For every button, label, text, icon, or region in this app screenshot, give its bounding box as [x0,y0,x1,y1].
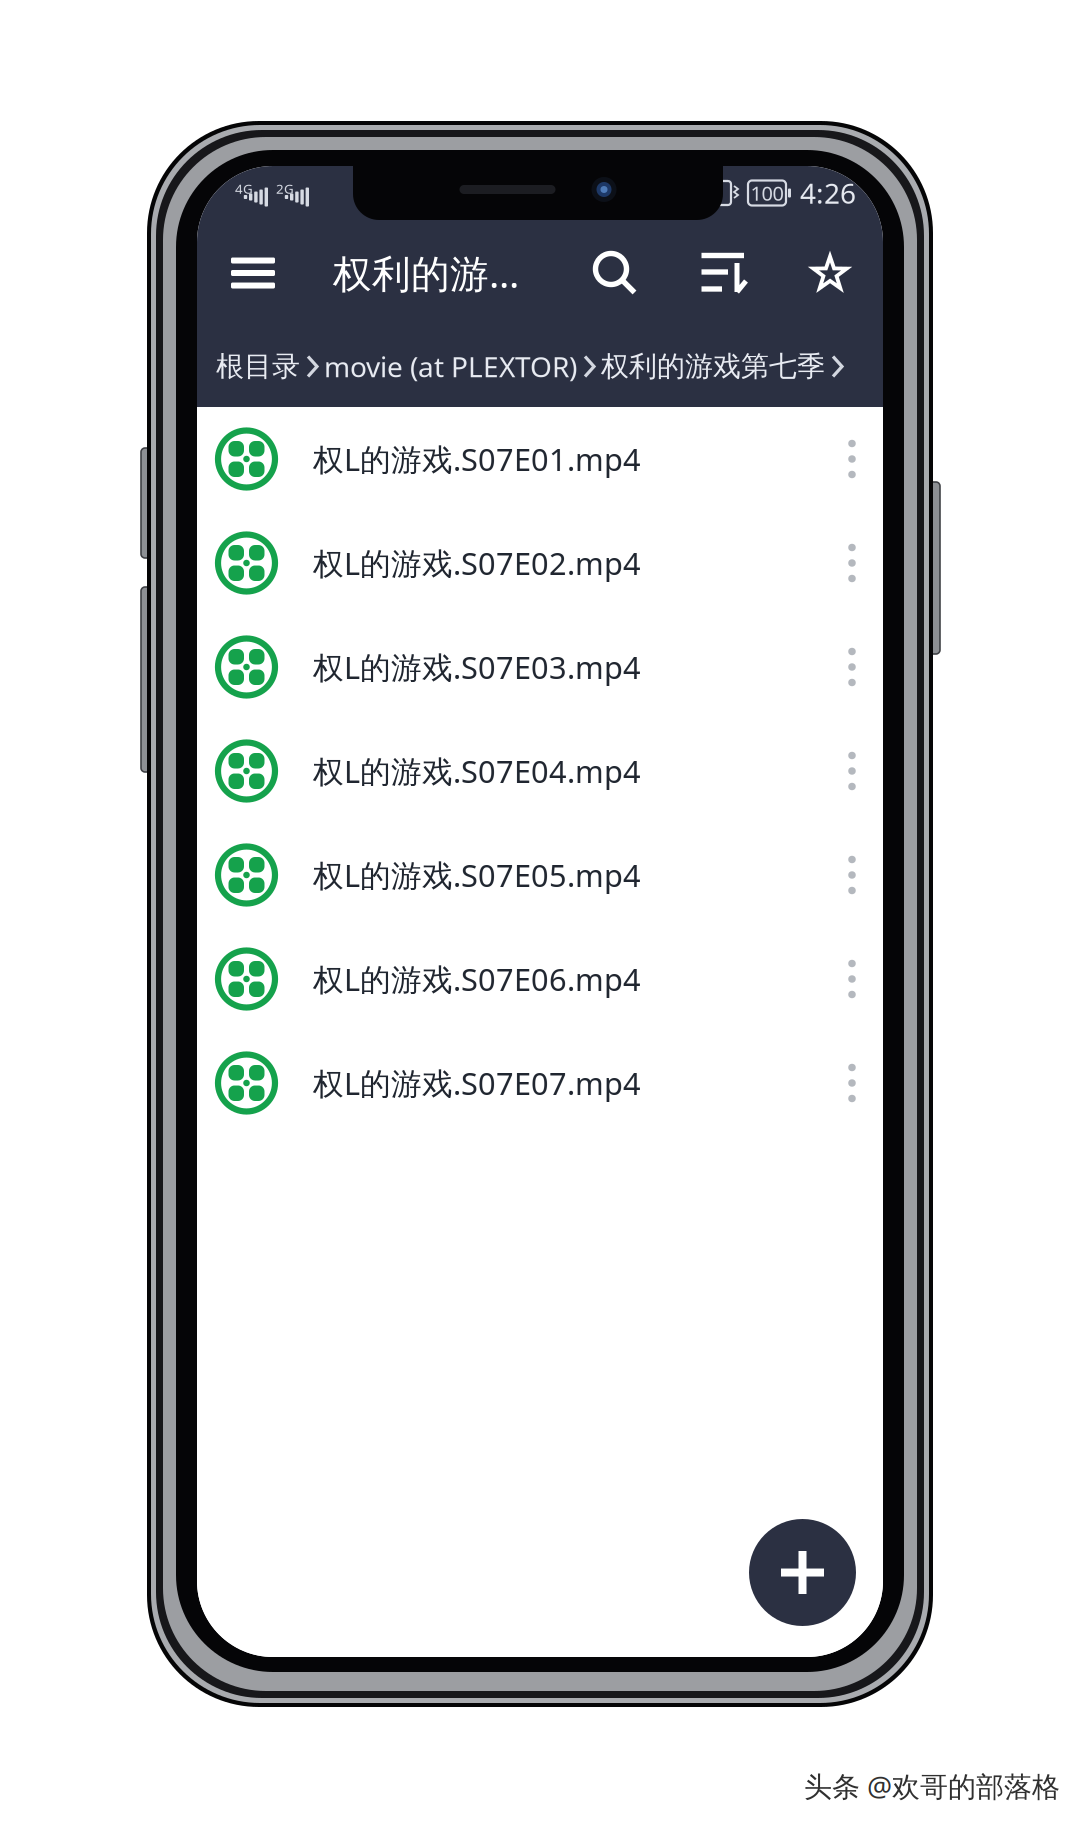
staticText: 权L的游戏.S07E03.mp4 [313,646,641,688]
button[interactable]: Sort [697,220,749,326]
staticText: 权L的游戏.S07E04.mp4 [313,750,641,792]
staticText: 根目录 [216,349,300,384]
button[interactable]: Add [749,1519,856,1626]
staticText: 4:26 [800,174,856,212]
button[interactable]: 权L的游戏.S07E03.mp4 [197,615,883,719]
staticText: 头条 @欢哥的部落格 [804,1767,1060,1805]
staticText: movie (at PLEXTOR) [324,347,577,385]
staticText: 权L的游戏.S07E02.mp4 [313,542,641,584]
staticText: 权利的游... [333,247,519,299]
staticText: 权L的游戏.S07E01.mp4 [313,438,641,480]
staticText: 100 [750,179,783,207]
staticText: 权L的游戏.S07E05.mp4 [313,854,641,896]
button[interactable]: 权L的游戏.S07E01.mp4 [197,407,883,511]
button[interactable]: Menu [215,220,291,326]
button[interactable]: 权L的游戏.S07E02.mp4 [197,511,883,615]
button[interactable]: 权利的游戏第七季 [601,349,825,384]
button[interactable]: 权L的游戏.S07E04.mp4 [197,719,883,823]
button[interactable]: Favorite [811,220,849,326]
staticText: 2G [276,179,294,198]
button[interactable]: 权L的游戏.S07E07.mp4 [197,1031,883,1135]
staticText: 权利的游戏第七季 [601,349,825,384]
button[interactable]: 权L的游戏.S07E06.mp4 [197,927,883,1031]
staticText: 权L的游戏.S07E06.mp4 [313,958,641,1000]
button[interactable]: 权L的游戏.S07E05.mp4 [197,823,883,927]
button[interactable]: movie (at PLEXTOR) [324,347,577,385]
button[interactable]: Search [589,220,641,326]
button[interactable]: 根目录 [216,349,300,384]
staticText: 权L的游戏.S07E07.mp4 [313,1062,641,1104]
staticText: 4G [235,179,253,198]
